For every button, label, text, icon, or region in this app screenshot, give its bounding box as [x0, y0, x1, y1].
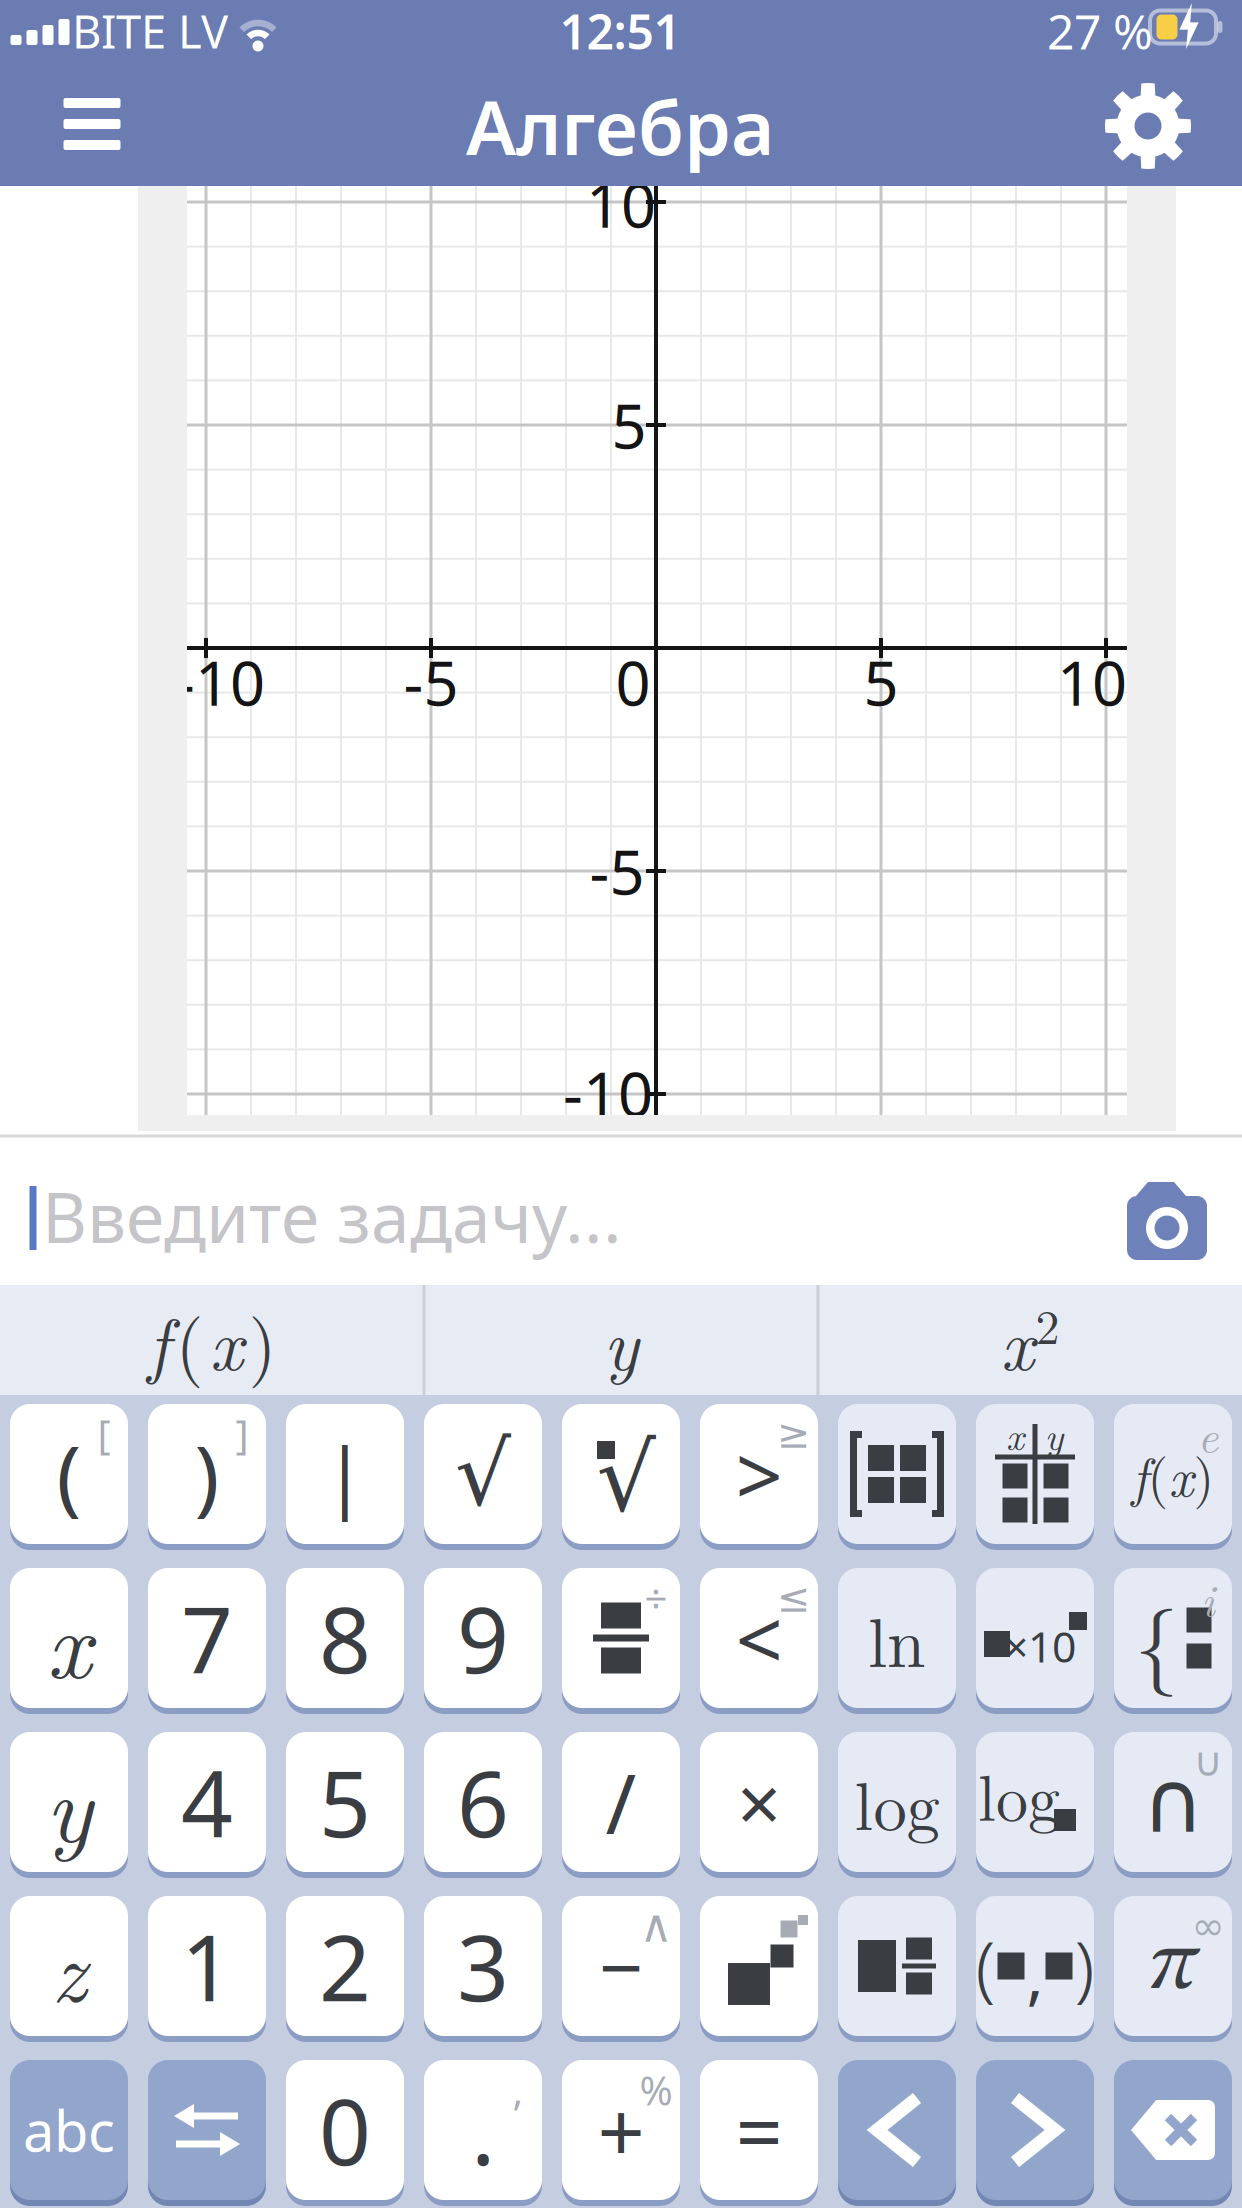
- staticText: ∪: [1193, 1739, 1222, 1785]
- button[interactable]: ×: [700, 1732, 818, 1872]
- staticText: 10: [1057, 641, 1127, 723]
- button[interactable]: 7: [148, 1568, 266, 1708]
- staticText: BITE LV: [72, 1, 228, 61]
- button[interactable]: Point: [976, 1896, 1094, 2036]
- staticText: √: [596, 1425, 655, 1531]
- staticText: y: [1044, 1407, 1063, 1461]
- staticText: ÷: [644, 1571, 667, 1624]
- staticText: ∞: [1191, 1903, 1224, 1949]
- button[interactable]: Square root: [424, 1404, 542, 1544]
- button[interactable]: x: [820, 1285, 1240, 1395]
- button[interactable]: Exponent: [700, 1896, 818, 2036]
- staticText: ×: [737, 1751, 781, 1853]
- staticText: x: [209, 1289, 242, 1391]
- button[interactable]: f: [1114, 1404, 1232, 1544]
- button[interactable]: Delete: [1114, 2060, 1232, 2200]
- button[interactable]: f: [7, 1285, 417, 1395]
- button[interactable]: ): [148, 1404, 266, 1544]
- staticText: 8: [319, 1578, 371, 1698]
- button[interactable]: 3: [424, 1896, 542, 2036]
- button[interactable]: x: [10, 1568, 128, 1708]
- button[interactable]: .: [424, 2060, 542, 2200]
- button[interactable]: 9: [424, 1568, 542, 1708]
- button[interactable]: ln: [838, 1568, 956, 1708]
- staticText: 0: [319, 2070, 371, 2190]
- staticText: >: [735, 1419, 782, 1529]
- staticText: 4: [181, 1742, 233, 1862]
- staticText: 1: [181, 1906, 233, 2026]
- button[interactable]: y: [10, 1732, 128, 1872]
- button[interactable]: (: [10, 1404, 128, 1544]
- staticText: ]: [235, 1407, 248, 1460]
- button[interactable]: z: [10, 1896, 128, 2036]
- button[interactable]: Camera: [1117, 1166, 1217, 1266]
- staticText: Введите задачу...: [42, 1170, 622, 1262]
- staticText: 5: [863, 641, 898, 723]
- button[interactable]: 1: [148, 1896, 266, 2036]
- button[interactable]: Swap: [148, 2060, 266, 2200]
- staticText: log: [854, 1755, 939, 1849]
- button[interactable]: Fraction: [562, 1568, 680, 1708]
- button[interactable]: <: [700, 1568, 818, 1708]
- staticText: .: [471, 2070, 495, 2190]
- button[interactable]: Scientific notation: [976, 1568, 1094, 1708]
- button[interactable]: 5: [286, 1732, 404, 1872]
- staticText: x: [1000, 1289, 1033, 1391]
- staticText: ln: [868, 1589, 926, 1687]
- staticText: 5: [611, 384, 646, 466]
- staticText: [: [97, 1407, 110, 1460]
- staticText: ≥: [777, 1411, 811, 1457]
- button[interactable]: 2: [286, 1896, 404, 2036]
- staticText: (: [56, 1419, 81, 1529]
- staticText: 2: [319, 1906, 371, 2026]
- staticText: (: [175, 1289, 203, 1391]
- button[interactable]: Settings: [1103, 81, 1193, 171]
- button[interactable]: log: [838, 1732, 956, 1872]
- staticText: abc: [23, 2093, 115, 2167]
- button[interactable]: /: [562, 1732, 680, 1872]
- staticText: 0: [615, 641, 650, 723]
- staticText: ×10: [1004, 1618, 1076, 1674]
- staticText: √: [455, 1424, 511, 1524]
- staticText: 9: [457, 1578, 509, 1698]
- staticText: x: [46, 1570, 91, 1706]
- staticText: <: [735, 1583, 782, 1693]
- button[interactable]: Piecewise: [1114, 1568, 1232, 1708]
- button[interactable]: Nth root: [562, 1404, 680, 1544]
- button[interactable]: ∩: [1114, 1732, 1232, 1872]
- button[interactable]: Move right: [976, 2060, 1094, 2200]
- button[interactable]: 4: [148, 1732, 266, 1872]
- button[interactable]: 8: [286, 1568, 404, 1708]
- staticText: |: [323, 1423, 366, 1525]
- staticText: x: [1006, 1407, 1024, 1461]
- button[interactable]: Введите задачу...: [0, 1147, 1080, 1287]
- button[interactable]: Move left: [838, 2060, 956, 2200]
- button[interactable]: Mixed number: [838, 1896, 956, 2036]
- staticText: 6: [457, 1742, 509, 1862]
- staticText: +: [597, 2075, 644, 2185]
- button[interactable]: −: [562, 1896, 680, 2036]
- staticText: ∩: [1142, 1754, 1204, 1850]
- staticText: f: [1131, 1436, 1147, 1512]
- staticText: 7: [181, 1578, 233, 1698]
- staticText: 10: [586, 163, 656, 245]
- button[interactable]: +: [562, 2060, 680, 2200]
- button[interactable]: y: [426, 1285, 816, 1395]
- button[interactable]: abc: [10, 2060, 128, 2200]
- staticText: (: [975, 1918, 995, 2014]
- staticText: 2: [1035, 1290, 1059, 1358]
- button[interactable]: =: [700, 2060, 818, 2200]
- staticText: z: [51, 1906, 86, 2026]
- button[interactable]: 0: [286, 2060, 404, 2200]
- button[interactable]: Log base: [976, 1732, 1094, 1872]
- button[interactable]: 6: [424, 1732, 542, 1872]
- button[interactable]: Table: [976, 1404, 1094, 1544]
- staticText: x: [1168, 1436, 1193, 1512]
- button[interactable]: |: [286, 1404, 404, 1544]
- button[interactable]: Matrix: [838, 1404, 956, 1544]
- staticText: ∧: [639, 1900, 672, 1952]
- staticText: e: [1197, 1402, 1218, 1466]
- button[interactable]: π: [1114, 1896, 1232, 2036]
- button[interactable]: Menu: [52, 84, 132, 164]
- button[interactable]: >: [700, 1404, 818, 1544]
